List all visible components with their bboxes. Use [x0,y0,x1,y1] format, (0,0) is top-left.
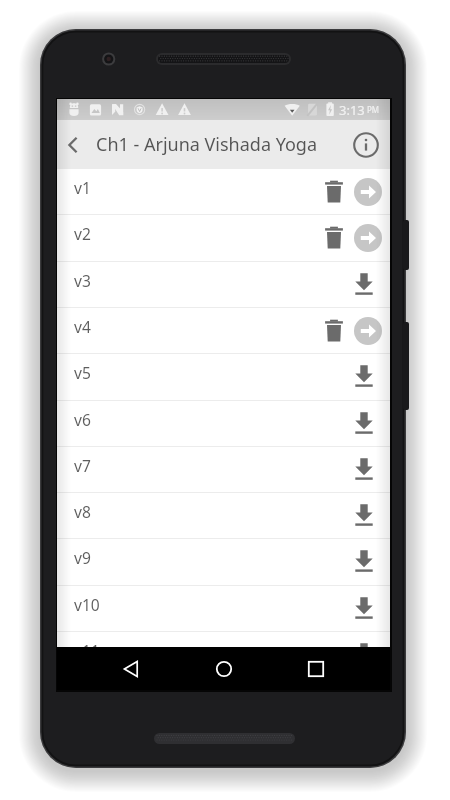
button[interactable]: Delete [318,308,350,353]
button[interactable]: Back [105,647,157,690]
staticText: v1 [74,177,91,198]
staticText: PM [367,104,380,115]
button[interactable]: Info [349,128,383,162]
button[interactable]: Delete [318,169,350,214]
button[interactable]: v3 [57,262,390,307]
staticText: v4 [74,316,91,337]
button[interactable]: v11 [57,632,390,677]
staticText: v3 [74,270,91,291]
staticText: v8 [74,501,91,522]
button[interactable]: Navigate up [58,123,88,167]
staticText: v11 [74,640,100,661]
staticText: v5 [74,362,91,383]
button[interactable]: Recents [290,647,342,690]
button[interactable]: v9 [57,539,390,584]
button[interactable]: Download [348,539,380,584]
button[interactable]: Download [348,401,380,446]
button[interactable]: Home [198,647,250,690]
staticText: 3:13 [339,101,365,119]
staticText: v6 [74,409,91,430]
staticText: v10 [74,594,100,615]
button[interactable]: Play [354,178,382,206]
button[interactable]: v4 [57,308,390,353]
button[interactable]: v8 [57,493,390,538]
button[interactable]: Play [354,317,382,345]
button[interactable]: v1 [57,169,390,214]
button[interactable]: Download [348,447,380,492]
button[interactable]: Download [348,354,380,399]
button[interactable]: v6 [57,401,390,446]
staticText: v9 [74,547,91,568]
button[interactable]: Download [348,586,380,631]
button[interactable]: Download [348,262,380,307]
staticText: v2 [74,223,91,244]
button[interactable]: Download [348,493,380,538]
staticText: Ch1 - Arjuna Vishada Yoga [96,132,318,157]
button[interactable]: v7 [57,447,390,492]
button[interactable]: Delete [318,215,350,260]
button[interactable]: Download [348,632,380,677]
button[interactable]: v2 [57,215,390,260]
button[interactable]: Play [354,224,382,252]
button[interactable]: v10 [57,586,390,631]
staticText: v7 [74,455,91,476]
button[interactable]: v5 [57,354,390,399]
